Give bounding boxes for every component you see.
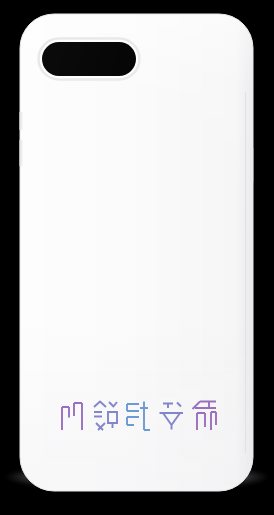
button[interactable]: White phone case product photo [0,0,274,515]
